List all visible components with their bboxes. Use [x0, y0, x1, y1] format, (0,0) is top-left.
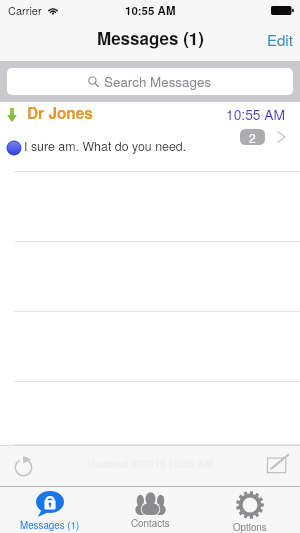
staticText: Carrier: [8, 2, 42, 18]
button[interactable]: Compose new message: [258, 447, 296, 485]
staticText: 2: [249, 129, 256, 145]
staticText: 10:55 AM: [125, 2, 176, 18]
staticText: Options: [233, 520, 267, 533]
staticText: Messages (1): [97, 26, 204, 50]
staticText: I sure am. What do you need.: [24, 137, 187, 155]
button[interactable]: Messages (1): [0, 486, 100, 533]
staticText: Dr Jones: [27, 102, 93, 124]
button[interactable]: Refresh: [4, 447, 42, 485]
staticText: Messages (1): [20, 518, 80, 532]
staticText: Contacts: [131, 516, 170, 530]
button[interactable]: Dr Jones: [0, 102, 300, 172]
staticText: Edit: [267, 29, 293, 50]
button[interactable]: Options: [200, 486, 300, 533]
button[interactable]: Search Messages: [7, 68, 293, 95]
staticText: 10:55 AM: [226, 104, 286, 124]
staticText: Search Messages: [104, 72, 212, 91]
button[interactable]: Contacts: [100, 486, 200, 533]
button[interactable]: Edit: [257, 20, 300, 61]
